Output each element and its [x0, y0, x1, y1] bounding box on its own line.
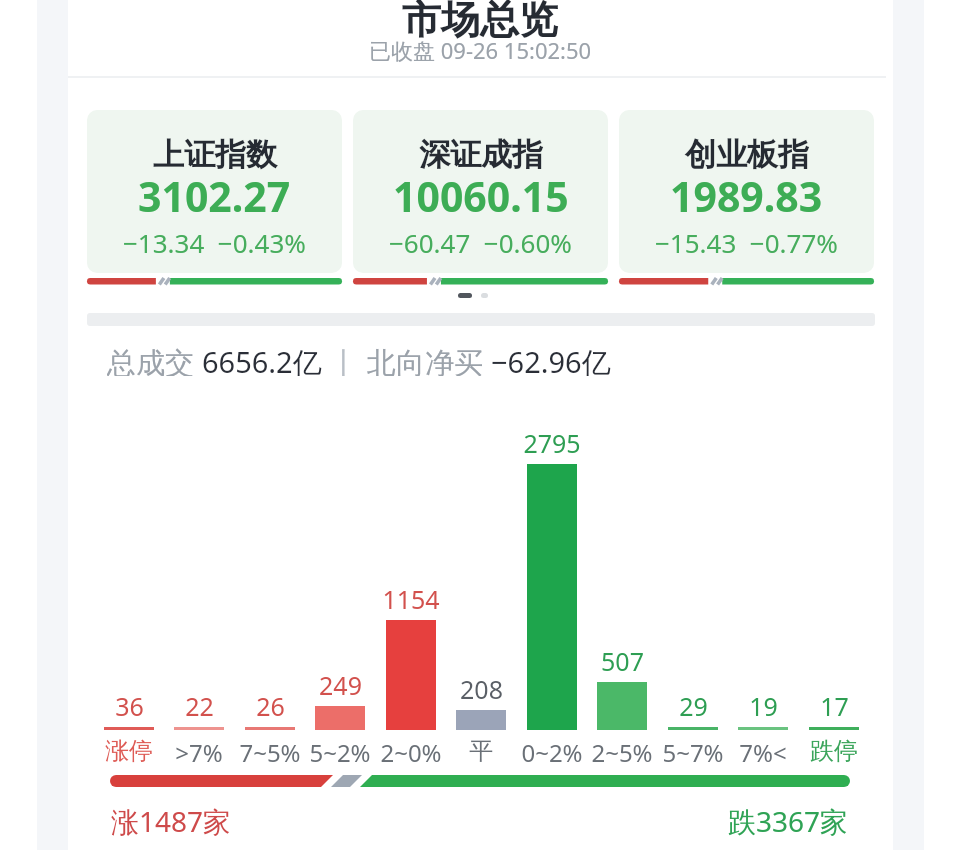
staticText: 2795 [523, 426, 581, 456]
staticText: 北向净买 [367, 342, 491, 376]
staticText: 7%< [739, 736, 787, 766]
button[interactable]: 总成交 [107, 342, 611, 376]
staticText: 208 [460, 672, 503, 702]
staticText: 22 [185, 689, 214, 719]
staticText: 深证成指 [419, 135, 543, 174]
staticText: −62.96亿 [491, 342, 611, 376]
staticText: 19 [749, 689, 778, 719]
staticText: 29 [679, 689, 708, 719]
staticText: 跌3367家 [728, 802, 849, 836]
staticText: −15.43 −0.77% [655, 225, 838, 257]
staticText: −60.47 −0.60% [389, 225, 572, 257]
staticText: 1154 [382, 582, 440, 612]
staticText: >7% [175, 736, 223, 766]
staticText: 1989.83 [670, 168, 823, 214]
staticText: 5~2% [309, 736, 371, 766]
staticText: 市场总览 [402, 0, 558, 44]
staticText: 已收盘 09-26 15:02:50 [369, 35, 592, 63]
staticText: 10060.15 [393, 168, 569, 214]
staticText: 丨 [322, 342, 367, 376]
staticText: 2~5% [591, 736, 653, 766]
staticText: 3102.27 [138, 168, 291, 214]
button[interactable]: 深证成指 [353, 110, 608, 273]
button[interactable]: 创业板指 [619, 110, 874, 273]
staticText: 创业板指 [685, 135, 809, 174]
staticText: 5~7% [662, 736, 724, 766]
staticText: 26 [256, 689, 285, 719]
staticText: 17 [820, 689, 849, 719]
staticText: 涨1487家 [111, 802, 232, 836]
staticText: 总成交 [107, 342, 202, 376]
staticText: 2~0% [380, 736, 442, 766]
staticText: 涨停 [105, 736, 153, 766]
staticText: 7~5% [239, 736, 301, 766]
staticText: 507 [601, 644, 644, 674]
staticText: 上证指数 [153, 135, 277, 174]
staticText: 249 [319, 668, 362, 698]
staticText: 0~2% [521, 736, 583, 766]
staticText: −13.34 −0.43% [123, 225, 306, 257]
button[interactable]: 上证指数 [87, 110, 342, 273]
staticText: 6656.2亿 [202, 342, 322, 376]
staticText: 跌停 [810, 736, 858, 766]
staticText: 36 [115, 689, 144, 719]
staticText: 平 [469, 736, 493, 766]
